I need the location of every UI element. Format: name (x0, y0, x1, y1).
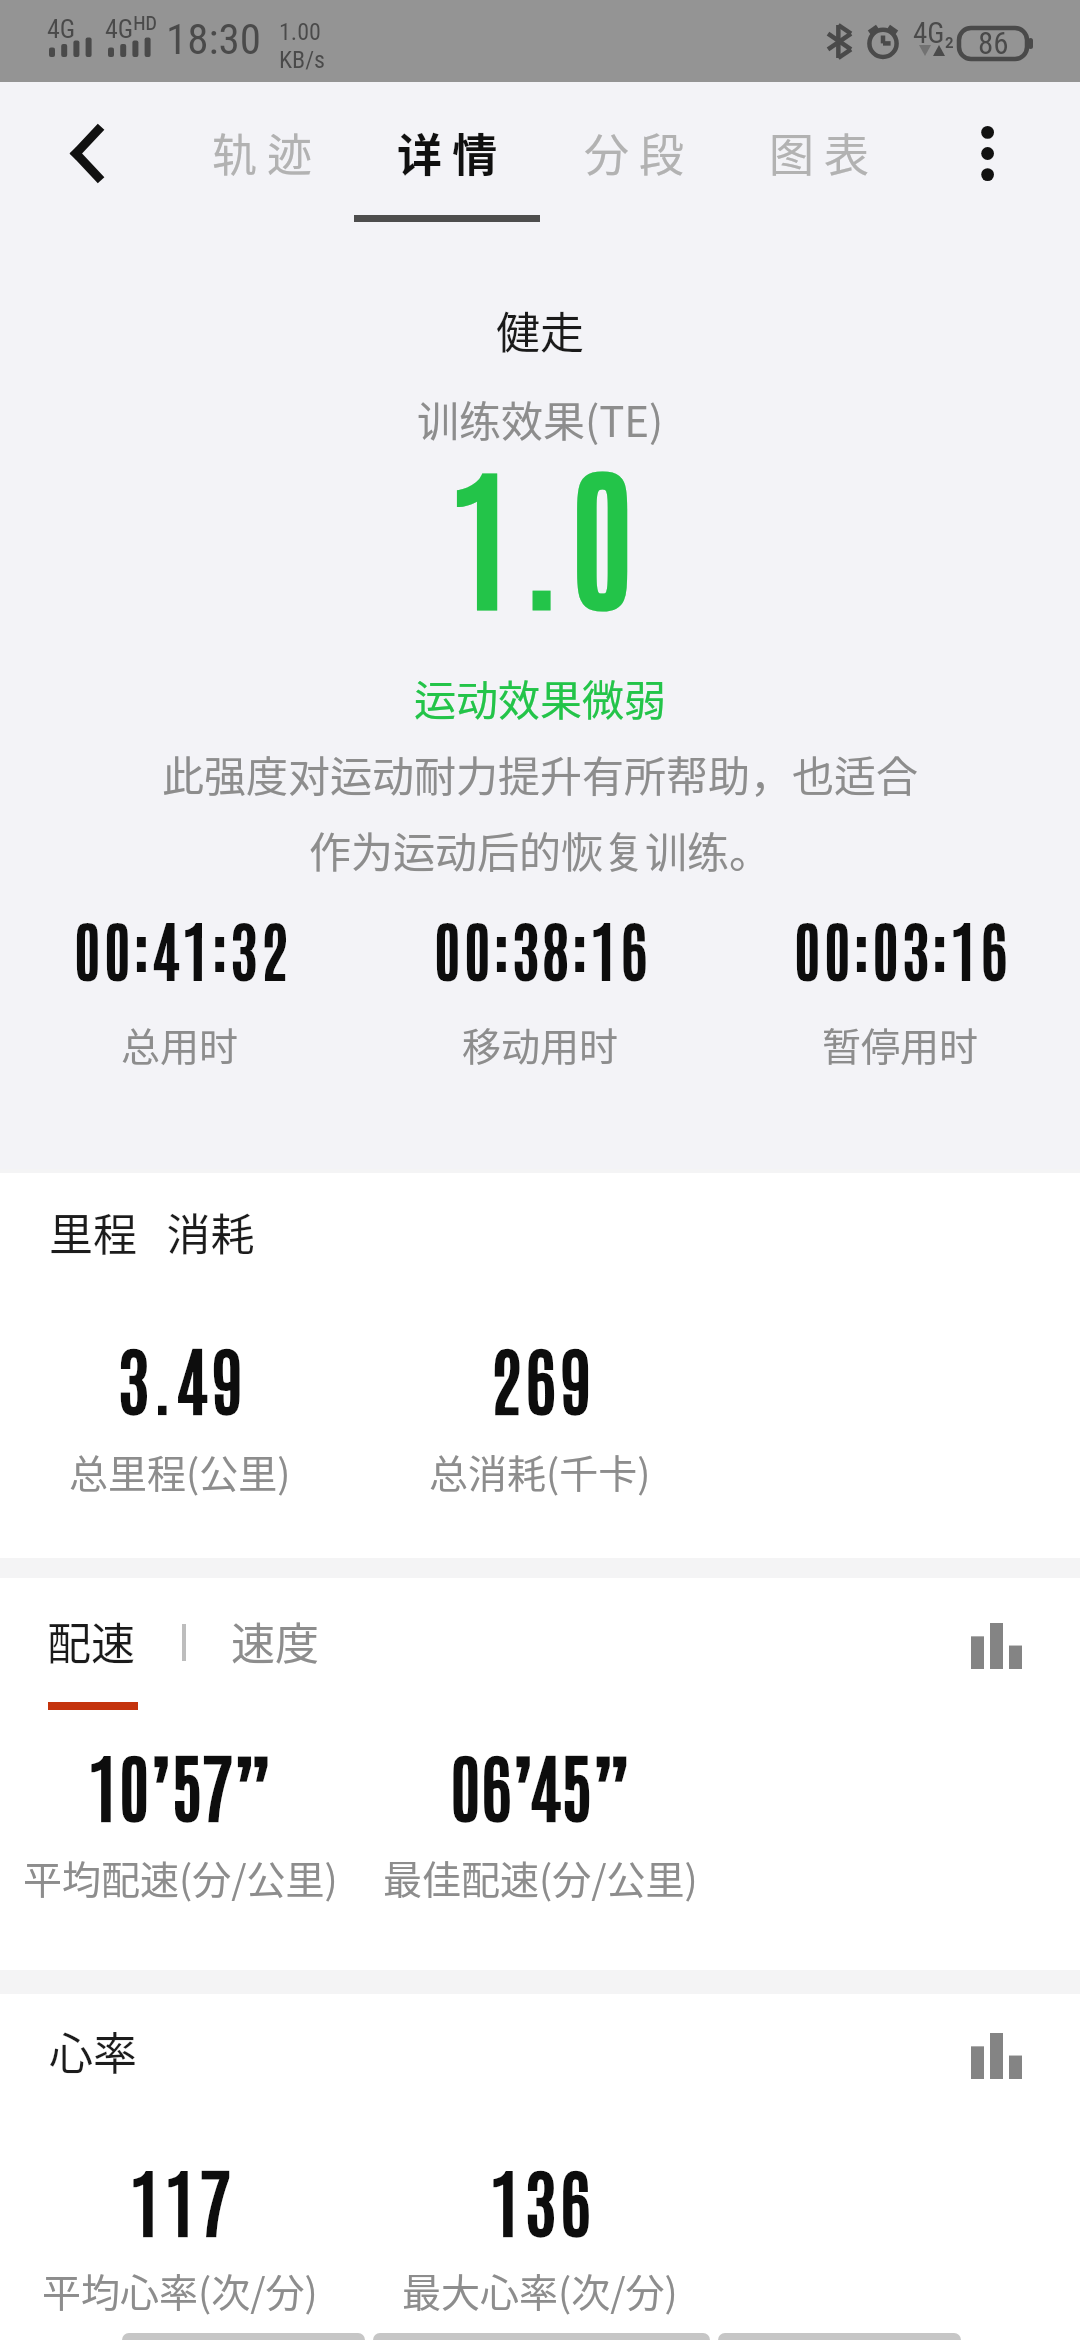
staticText: 00:38:16 (434, 906, 651, 989)
staticText: 分 段 (584, 120, 685, 185)
staticText: 269 (490, 1329, 595, 1425)
staticText: 18:30 (166, 14, 261, 64)
staticText: 10’57” (88, 1736, 272, 1832)
staticText: 图 表 (769, 120, 870, 185)
staticText: 运动效果微弱 (414, 667, 667, 728)
staticText: 117 (130, 2151, 235, 2247)
button[interactable]: Pace chart (950, 1600, 1042, 1692)
button[interactable]: Heart rate chart (950, 2010, 1042, 2102)
staticText: 里程 消耗 (49, 1200, 255, 1264)
staticText: 86 (978, 25, 1009, 61)
staticText: 4G (47, 14, 76, 44)
staticText: 4G₂ (913, 16, 955, 50)
staticText: 训练效果(TE) (417, 388, 664, 449)
button[interactable]: 图 表 (727, 90, 911, 215)
staticText: 最大心率(次/分) (402, 2262, 678, 2318)
button[interactable]: 详 情 (355, 90, 539, 215)
staticText: 00:03:16 (794, 906, 1011, 989)
staticText: 暂停用时 (822, 1016, 979, 1072)
button[interactable]: More options (950, 116, 1024, 190)
button[interactable]: Back (50, 116, 124, 190)
staticText: 速度 (231, 1609, 319, 1673)
button[interactable]: 分 段 (542, 90, 726, 215)
staticText: 136 (490, 2151, 595, 2247)
staticText: 总用时 (121, 1016, 239, 1072)
staticText: 移动用时 (462, 1016, 619, 1072)
staticText: 配速 (47, 1609, 135, 1673)
staticText: 总里程(公里) (69, 1443, 291, 1499)
staticText: 此强度对运动耐力提升有所帮助，也适合 (162, 743, 919, 804)
staticText: 详 情 (397, 120, 498, 185)
staticText: 3.49 (118, 1329, 247, 1425)
button[interactable]: 速度 (231, 1609, 319, 1673)
staticText: 平均心率(次/分) (42, 2262, 318, 2318)
button[interactable]: 配速 (47, 1609, 135, 1673)
staticText: 06’45” (450, 1736, 631, 1832)
staticText: 最佳配速(分/公里) (383, 1849, 698, 1905)
staticText: 平均配速(分/公里) (23, 1849, 338, 1905)
staticText: 轨 迹 (212, 120, 313, 185)
staticText: 总消耗(千卡) (429, 1443, 651, 1499)
staticText: 1.00 (279, 18, 321, 46)
staticText: 心率 (49, 2019, 137, 2083)
staticText: KB/s (279, 46, 326, 74)
staticText: 健走 (496, 298, 584, 362)
staticText: 4Gᴴᴰ (105, 14, 157, 44)
button[interactable]: 轨 迹 (170, 90, 354, 215)
staticText: 00:41:32 (74, 906, 291, 989)
staticText: 1.0 (450, 431, 643, 629)
staticText: 作为运动后的恢复训练。 (309, 819, 772, 880)
